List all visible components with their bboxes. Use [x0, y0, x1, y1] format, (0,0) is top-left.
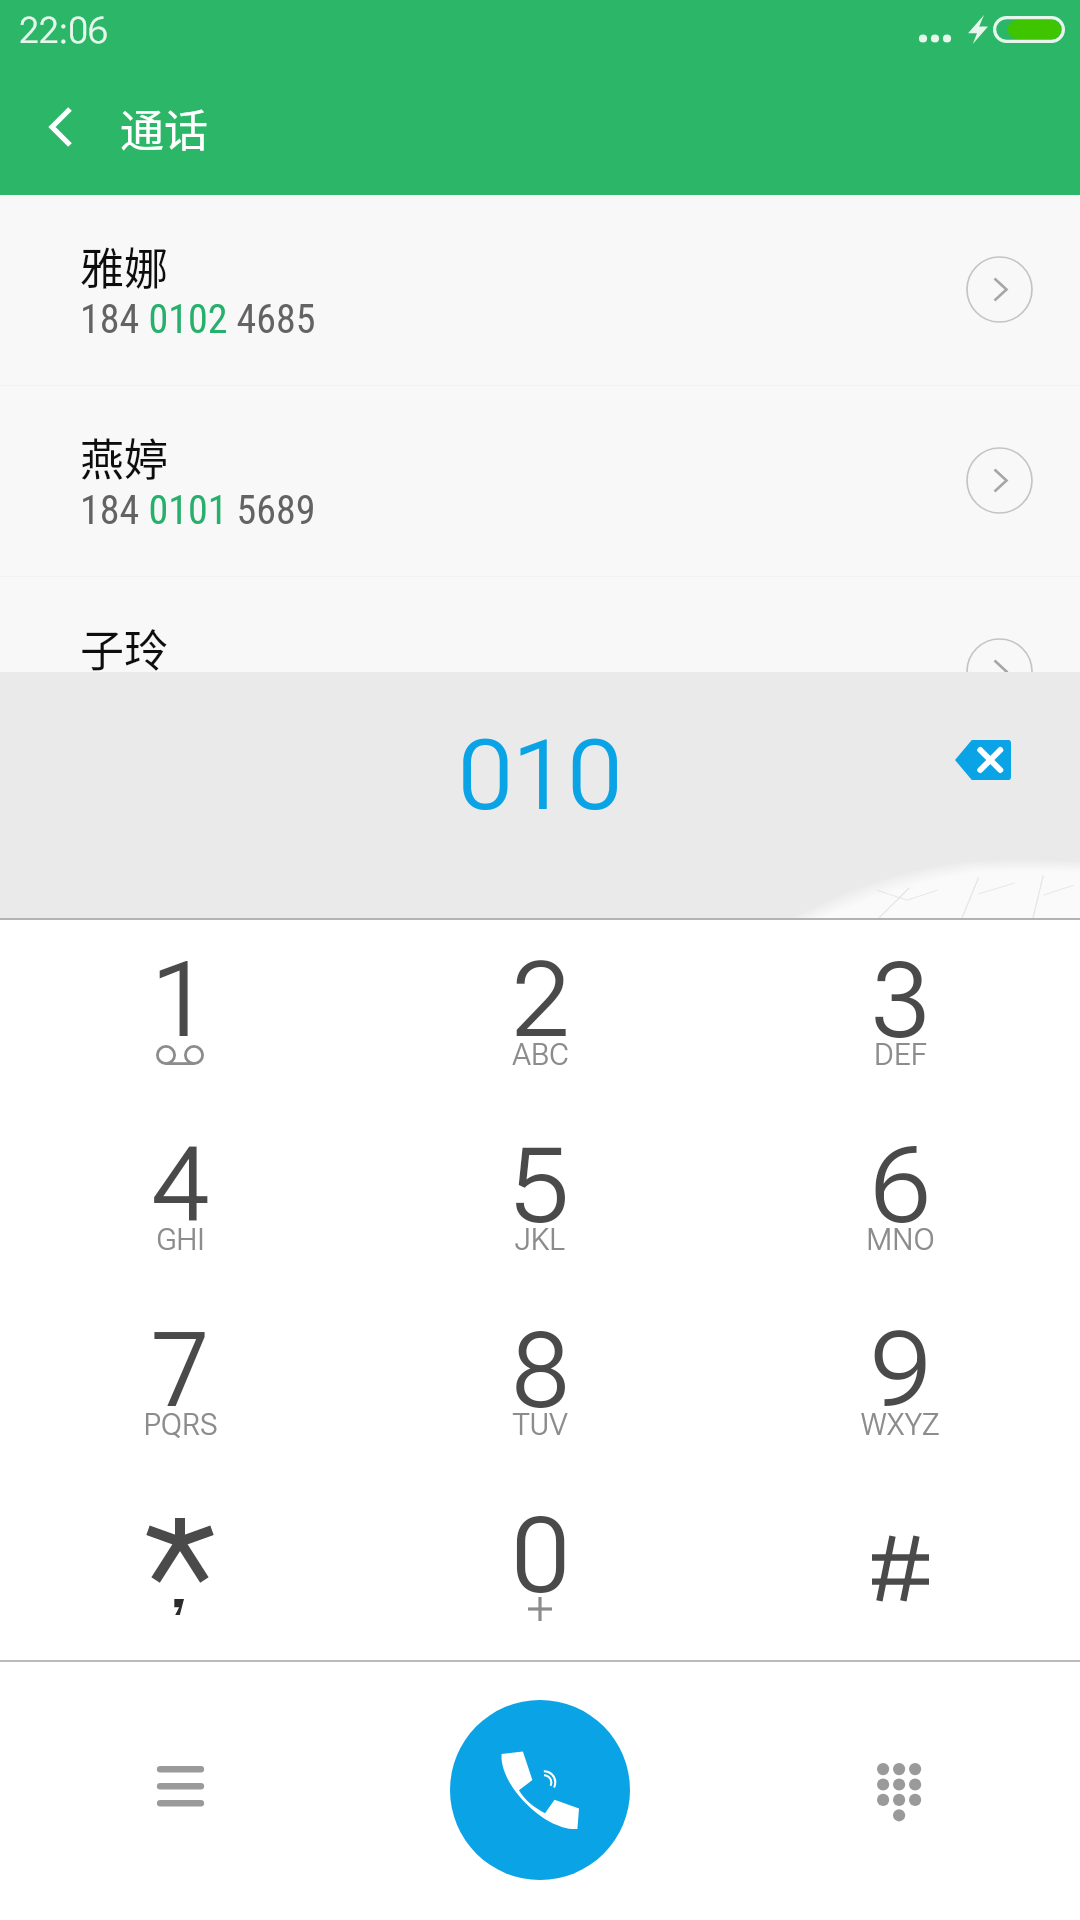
button[interactable]: Contact details — [966, 447, 1033, 514]
staticText: MNO — [866, 1222, 935, 1257]
staticText: PQRS — [143, 1407, 218, 1442]
staticText: 4 — [151, 1125, 210, 1247]
button[interactable]: 子玲 — [0, 577, 1080, 672]
button[interactable]: Contact details — [966, 638, 1033, 705]
button[interactable]: 8 — [360, 1290, 720, 1475]
staticText: 9 — [871, 1310, 930, 1432]
staticText: 3 — [871, 940, 930, 1062]
staticText: JKL — [515, 1222, 565, 1257]
staticText: 1 — [151, 940, 210, 1062]
staticText: DEF — [874, 1037, 927, 1072]
staticText: 184 0101 5689 — [80, 487, 316, 534]
staticText: ABC — [512, 1037, 569, 1072]
button[interactable]: 6 — [720, 1105, 1080, 1290]
button[interactable]: 0 — [360, 1475, 720, 1660]
button[interactable]: Back — [14, 98, 108, 166]
button[interactable]: 雅娜 — [0, 195, 1080, 385]
button[interactable]: Contact details — [966, 256, 1033, 323]
button[interactable]: 4 — [0, 1105, 360, 1290]
staticText: 8 — [511, 1310, 570, 1432]
button[interactable]: 2 — [360, 920, 720, 1105]
button[interactable] — [0, 1475, 360, 1660]
button[interactable]: Menu — [0, 1660, 360, 1920]
staticText: WXYZ — [860, 1407, 940, 1442]
staticText: 子玲 — [80, 616, 168, 680]
staticText: 通话 — [120, 96, 208, 160]
staticText: 5 — [511, 1125, 570, 1247]
staticText: TUV — [512, 1407, 568, 1442]
staticText: 雅娜 — [80, 234, 168, 298]
button[interactable]: 燕婷 — [0, 386, 1080, 576]
staticText: 22:06 — [19, 11, 108, 52]
staticText: GHI — [156, 1222, 205, 1257]
staticText: 7 — [151, 1310, 210, 1432]
staticText: 0 — [511, 1495, 570, 1617]
button[interactable]: Backspace — [938, 728, 1028, 792]
button[interactable]: 7 — [0, 1290, 360, 1475]
staticText: 010 — [458, 719, 623, 833]
button[interactable] — [720, 1475, 1080, 1660]
button[interactable]: 3 — [720, 920, 1080, 1105]
staticText: 燕婷 — [80, 425, 168, 489]
button[interactable]: 1 — [0, 920, 360, 1105]
button[interactable]: 9 — [720, 1290, 1080, 1475]
staticText: 6 — [871, 1125, 930, 1247]
button[interactable]: Call — [450, 1700, 630, 1880]
staticText: 2 — [511, 940, 570, 1062]
button[interactable]: 5 — [360, 1105, 720, 1290]
button[interactable]: Dialpad — [720, 1660, 1080, 1920]
staticText: 184 0102 4685 — [80, 296, 316, 343]
